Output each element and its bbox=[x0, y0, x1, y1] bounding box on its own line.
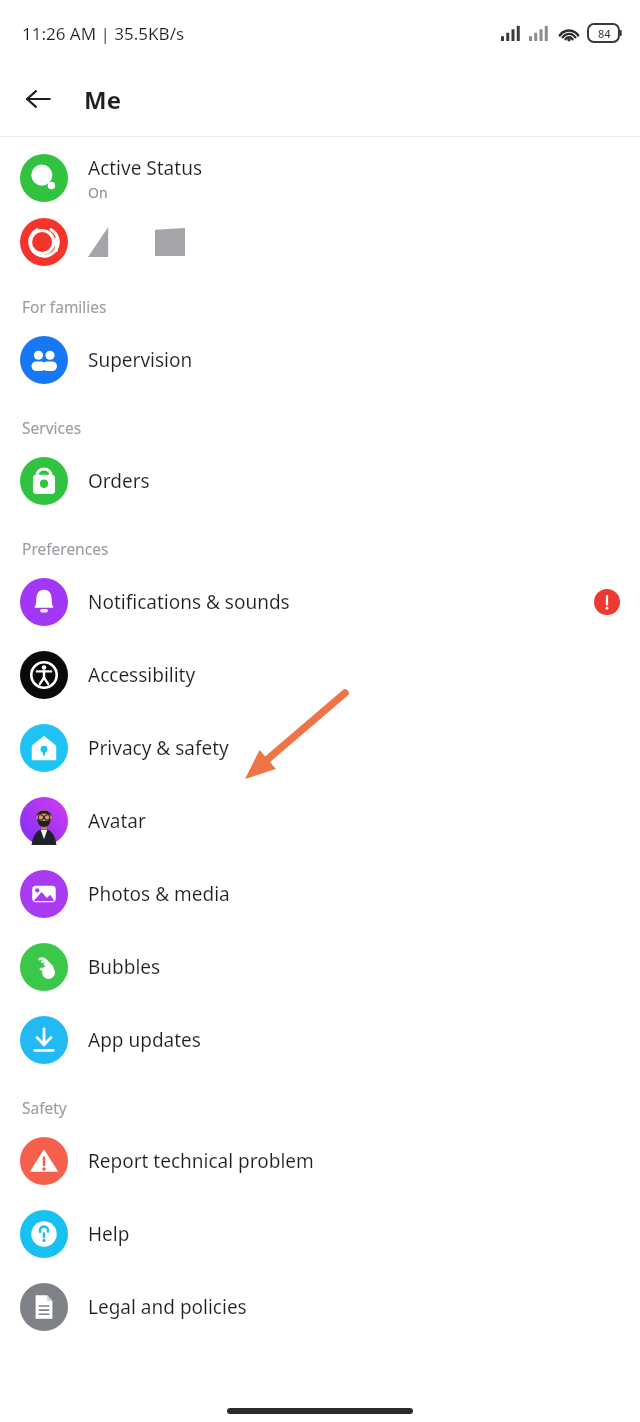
staticText: Notifications & sounds bbox=[88, 589, 290, 615]
button[interactable]: App updates bbox=[0, 1003, 640, 1076]
staticText: Active Status bbox=[88, 155, 202, 181]
staticText: Preferences bbox=[22, 538, 109, 559]
button[interactable] bbox=[0, 210, 640, 274]
staticText: For families bbox=[22, 296, 107, 317]
staticText: App updates bbox=[88, 1027, 201, 1053]
staticText: Report technical problem bbox=[88, 1148, 314, 1174]
staticText: Photos & media bbox=[88, 881, 230, 907]
staticText: 11:26 AM | 35.5KB/s bbox=[22, 22, 185, 45]
staticText: On bbox=[88, 183, 108, 202]
button[interactable]: Orders bbox=[0, 444, 640, 517]
staticText: Accessibility bbox=[88, 662, 196, 688]
button[interactable]: Active Status bbox=[0, 146, 640, 210]
staticText: Help bbox=[88, 1221, 130, 1247]
staticText: Bubbles bbox=[88, 954, 161, 980]
button[interactable]: Accessibility bbox=[0, 638, 640, 711]
button[interactable]: Back bbox=[14, 75, 62, 123]
button[interactable]: Supervision bbox=[0, 323, 640, 396]
staticText: Services bbox=[22, 417, 82, 438]
staticText: Privacy & safety bbox=[88, 735, 229, 761]
button[interactable]: Privacy & safety bbox=[0, 711, 640, 784]
button[interactable]: Report technical problem bbox=[0, 1124, 640, 1197]
button[interactable]: Legal and policies bbox=[0, 1270, 640, 1343]
staticText: Safety bbox=[22, 1097, 67, 1118]
button[interactable]: Help bbox=[0, 1197, 640, 1270]
staticText: Avatar bbox=[88, 808, 146, 834]
staticText: 84 bbox=[598, 26, 611, 41]
staticText: Orders bbox=[88, 468, 150, 494]
staticText: Legal and policies bbox=[88, 1294, 247, 1320]
button[interactable]: Photos & media bbox=[0, 857, 640, 930]
staticText: Me bbox=[84, 83, 121, 116]
staticText: Supervision bbox=[88, 347, 193, 373]
button[interactable]: Bubbles bbox=[0, 930, 640, 1003]
button[interactable]: Notifications & sounds bbox=[0, 565, 640, 638]
button[interactable]: Avatar bbox=[0, 784, 640, 857]
